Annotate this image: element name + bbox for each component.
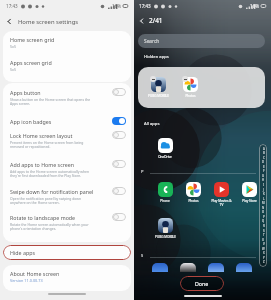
staticText: 16% (250, 3, 260, 9)
button[interactable]: Back (3, 15, 16, 28)
staticText: Prevent items on the Home screen from be… (10, 140, 84, 149)
staticText: PUBG MOBILE (155, 235, 176, 239)
staticText: Hide apps (10, 249, 35, 256)
staticText: E (263, 165, 265, 169)
button[interactable]: Add apps to Home screen (3, 155, 131, 182)
button[interactable]: Phone (152, 181, 178, 203)
staticText: V (263, 242, 265, 246)
staticText: Q (262, 219, 265, 223)
button[interactable]: Play Store (236, 181, 262, 203)
button[interactable]: Swipe down for notification panel (3, 182, 131, 209)
staticText: X (263, 251, 265, 255)
staticText: U (262, 238, 265, 242)
button[interactable]: Toggle (112, 213, 126, 221)
staticText: About Home screen (10, 270, 60, 277)
staticText: C (263, 156, 265, 160)
button[interactable]: Toggle (112, 117, 126, 125)
staticText: Add apps to Home screen (10, 161, 75, 168)
button[interactable]: PUBG MOBILE (152, 217, 178, 239)
staticText: All apps (144, 121, 160, 127)
staticText: Y (263, 256, 265, 260)
staticText: Photos (185, 94, 196, 98)
staticText: Hidden apps (144, 54, 169, 60)
staticText: Add apps to the Home screen automaticall… (10, 169, 90, 178)
staticText: K (263, 192, 265, 196)
staticText: 17:43 (139, 3, 151, 9)
button[interactable]: App icon badges (3, 108, 131, 127)
staticText: Open the notification panel by swiping d… (10, 196, 82, 205)
button[interactable]: Hide apps (3, 245, 131, 260)
staticText: T (263, 233, 265, 237)
staticText: A (263, 147, 265, 151)
staticText: Apps screen grid (10, 59, 52, 66)
staticText: Lock Home screen layout (10, 132, 73, 139)
staticText: G (262, 174, 265, 178)
button[interactable]: Toggle (112, 187, 126, 195)
staticText: 5x5 (10, 44, 17, 49)
staticText: Play Movies & TV (211, 199, 232, 207)
button[interactable]: Toggle (112, 160, 126, 168)
button[interactable]: Play Movies & TV (208, 181, 234, 207)
staticText: Show a button on the Home screen that op… (10, 97, 91, 106)
staticText: R (263, 224, 265, 228)
button[interactable]: Back (136, 15, 147, 26)
staticText: Version 11.0.00.73 (10, 278, 43, 283)
staticText: F (263, 169, 265, 173)
staticText: Z (263, 260, 265, 264)
staticText: 5x5 (10, 67, 17, 72)
button[interactable]: PUBG MOBILE (145, 76, 171, 98)
staticText: J (263, 188, 264, 192)
staticText: Photos (188, 199, 199, 203)
button[interactable]: Search (138, 34, 265, 48)
staticText: 16% (112, 3, 122, 9)
staticText: B (263, 151, 265, 155)
staticText: W (262, 247, 265, 251)
button[interactable]: OneDrive (152, 137, 178, 159)
staticText: O (262, 210, 265, 214)
staticText: Rotate the Home screen automatically whe… (10, 222, 89, 231)
staticText: H (262, 178, 265, 182)
staticText: I (263, 183, 264, 187)
staticText: Play Store (242, 199, 257, 203)
staticText: 2/41 (149, 16, 163, 25)
button[interactable]: Done (180, 276, 224, 291)
button[interactable]: Apps button (3, 83, 131, 108)
staticText: Phone (160, 199, 170, 203)
staticText: Apps button (10, 89, 41, 96)
staticText: Rotate to landscape mode (10, 214, 76, 221)
staticText: L (263, 197, 265, 201)
button[interactable]: Toggle (112, 88, 126, 96)
button[interactable]: Lock Home screen layout (3, 127, 131, 155)
staticText: P (263, 215, 265, 219)
staticText: M (262, 201, 265, 205)
staticText: Done (195, 280, 209, 287)
button[interactable]: Apps screen grid (3, 59, 131, 72)
staticText: Home screen grid (10, 36, 55, 43)
staticText: S (263, 229, 265, 233)
staticText: P (141, 169, 144, 174)
button[interactable]: Toggle (112, 131, 126, 139)
staticText: D (262, 160, 265, 164)
button[interactable]: Photos (177, 76, 203, 98)
staticText: App icon badges (10, 118, 52, 125)
staticText: Home screen settings (18, 18, 79, 26)
staticText: 17:43 (6, 3, 18, 9)
staticText: OneDrive (158, 155, 172, 159)
button[interactable]: About Home screen (3, 265, 131, 291)
staticText: Search (144, 38, 160, 45)
button[interactable]: Photos (180, 181, 206, 203)
button[interactable]: Alphabet index (259, 144, 267, 267)
staticText: S (141, 253, 144, 258)
button[interactable]: Rotate to landscape mode (3, 209, 131, 236)
staticText: Swipe down for notification panel (10, 188, 94, 195)
staticText: PUBG MOBILE (148, 94, 169, 98)
staticText: N (262, 206, 265, 210)
button[interactable]: Home screen grid (3, 36, 131, 49)
